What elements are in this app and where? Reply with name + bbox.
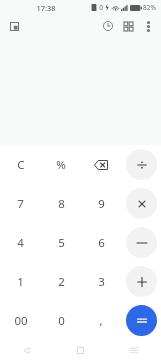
button[interactable]: Multiply (121, 184, 161, 223)
button[interactable]: Home (53, 340, 107, 360)
button[interactable]: 9 (81, 184, 121, 223)
staticText: 0 (99, 3, 103, 12)
button[interactable]: % (41, 145, 81, 184)
button[interactable]: Converter (118, 16, 138, 36)
staticText: 7 (17, 196, 24, 212)
staticText: 17:38 (36, 3, 56, 13)
button[interactable]: 8 (41, 184, 81, 223)
button[interactable]: 00 (0, 301, 41, 340)
button[interactable]: More options (138, 16, 158, 36)
staticText: 4 (17, 235, 24, 251)
button[interactable]: Add (121, 262, 161, 301)
button[interactable]: Backspace (81, 145, 121, 184)
button[interactable]: 5 (41, 223, 81, 262)
staticText: 2 (58, 274, 65, 290)
staticText: 00 (14, 313, 28, 329)
staticText: , (99, 313, 103, 329)
button[interactable]: Back (0, 340, 53, 360)
staticText: 1 (17, 274, 24, 290)
button[interactable]: 1 (0, 262, 41, 301)
staticText: 6 (98, 235, 105, 251)
button[interactable]: Scientific mode (5, 17, 23, 35)
button[interactable]: 0 (41, 301, 81, 340)
staticText: 3 (98, 274, 105, 290)
staticText: 8 (58, 196, 65, 212)
button[interactable]: 7 (0, 184, 41, 223)
button[interactable]: 3 (81, 262, 121, 301)
button[interactable]: Recent apps (107, 340, 161, 360)
button[interactable]: , (81, 301, 121, 340)
button[interactable]: History (98, 16, 118, 36)
staticText: 82% (143, 3, 156, 12)
button[interactable]: Divide (121, 145, 161, 184)
button[interactable]: 2 (41, 262, 81, 301)
staticText: C (17, 157, 25, 173)
staticText: % (56, 157, 66, 173)
staticText: 9 (98, 196, 105, 212)
staticText: 0 (58, 313, 65, 329)
staticText: 5 (58, 235, 65, 251)
button[interactable]: Subtract (121, 223, 161, 262)
button[interactable]: 4 (0, 223, 41, 262)
button[interactable]: C (0, 145, 41, 184)
button[interactable]: Equals (121, 301, 161, 340)
button[interactable]: 6 (81, 223, 121, 262)
